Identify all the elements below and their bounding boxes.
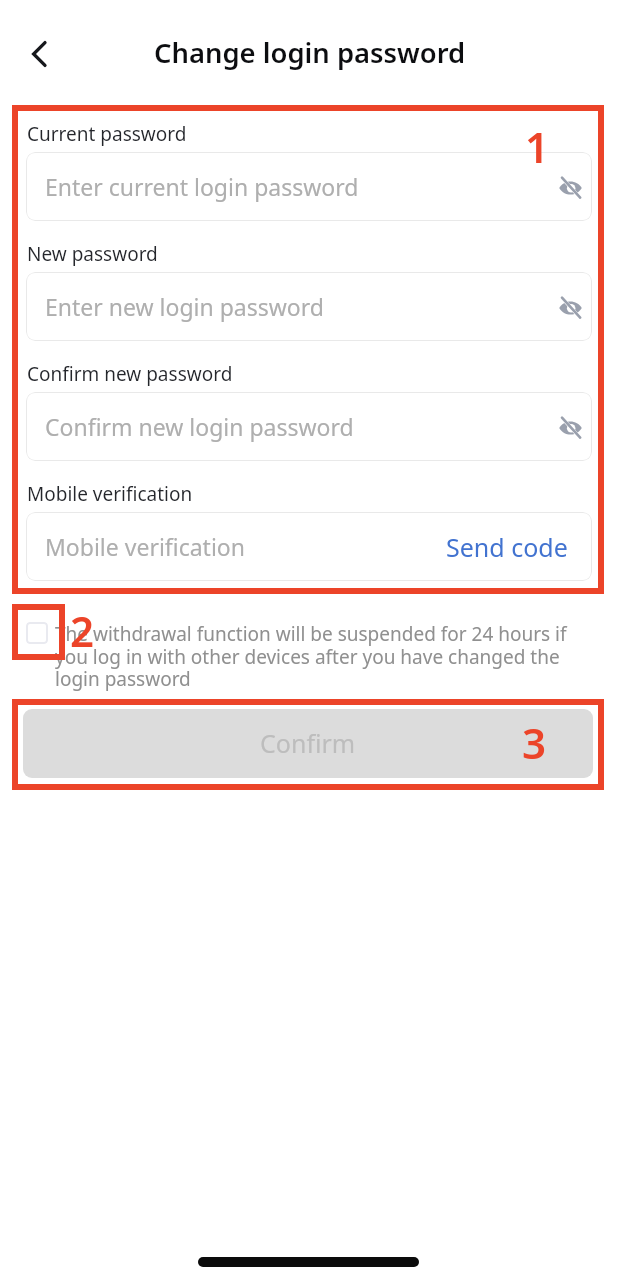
button[interactable]: Show password xyxy=(548,285,592,329)
staticText: The withdrawal function will be suspende… xyxy=(55,621,573,691)
staticText: Enter current login password xyxy=(45,171,359,202)
staticText: Confirm new login password xyxy=(45,411,354,442)
button[interactable]: The withdrawal function will be suspende… xyxy=(26,621,586,691)
button[interactable]: Mobile verification xyxy=(26,512,592,581)
staticText: 2 xyxy=(70,602,95,659)
staticText: Confirm new password xyxy=(27,361,233,387)
button[interactable]: Back xyxy=(11,26,67,82)
button[interactable]: Enter current login password xyxy=(26,152,592,221)
staticText: Enter new login password xyxy=(45,291,324,322)
button[interactable]: Confirm new login password xyxy=(26,392,592,461)
staticText: Mobile verification xyxy=(45,531,245,562)
button[interactable]: Enter new login password xyxy=(26,272,592,341)
button[interactable]: Show password xyxy=(548,165,592,209)
staticText: 1 xyxy=(525,118,550,175)
staticText: New password xyxy=(27,241,158,267)
staticText: Current password xyxy=(27,121,187,147)
button[interactable]: Show password xyxy=(548,405,592,449)
button[interactable]: Send code xyxy=(422,520,592,574)
button[interactable]: Confirm xyxy=(23,709,593,778)
staticText: Send code xyxy=(446,530,568,564)
staticText: Mobile verification xyxy=(27,481,193,507)
staticText: Change login password xyxy=(154,34,466,71)
staticText: 3 xyxy=(522,714,547,771)
staticText: Confirm xyxy=(260,726,356,760)
